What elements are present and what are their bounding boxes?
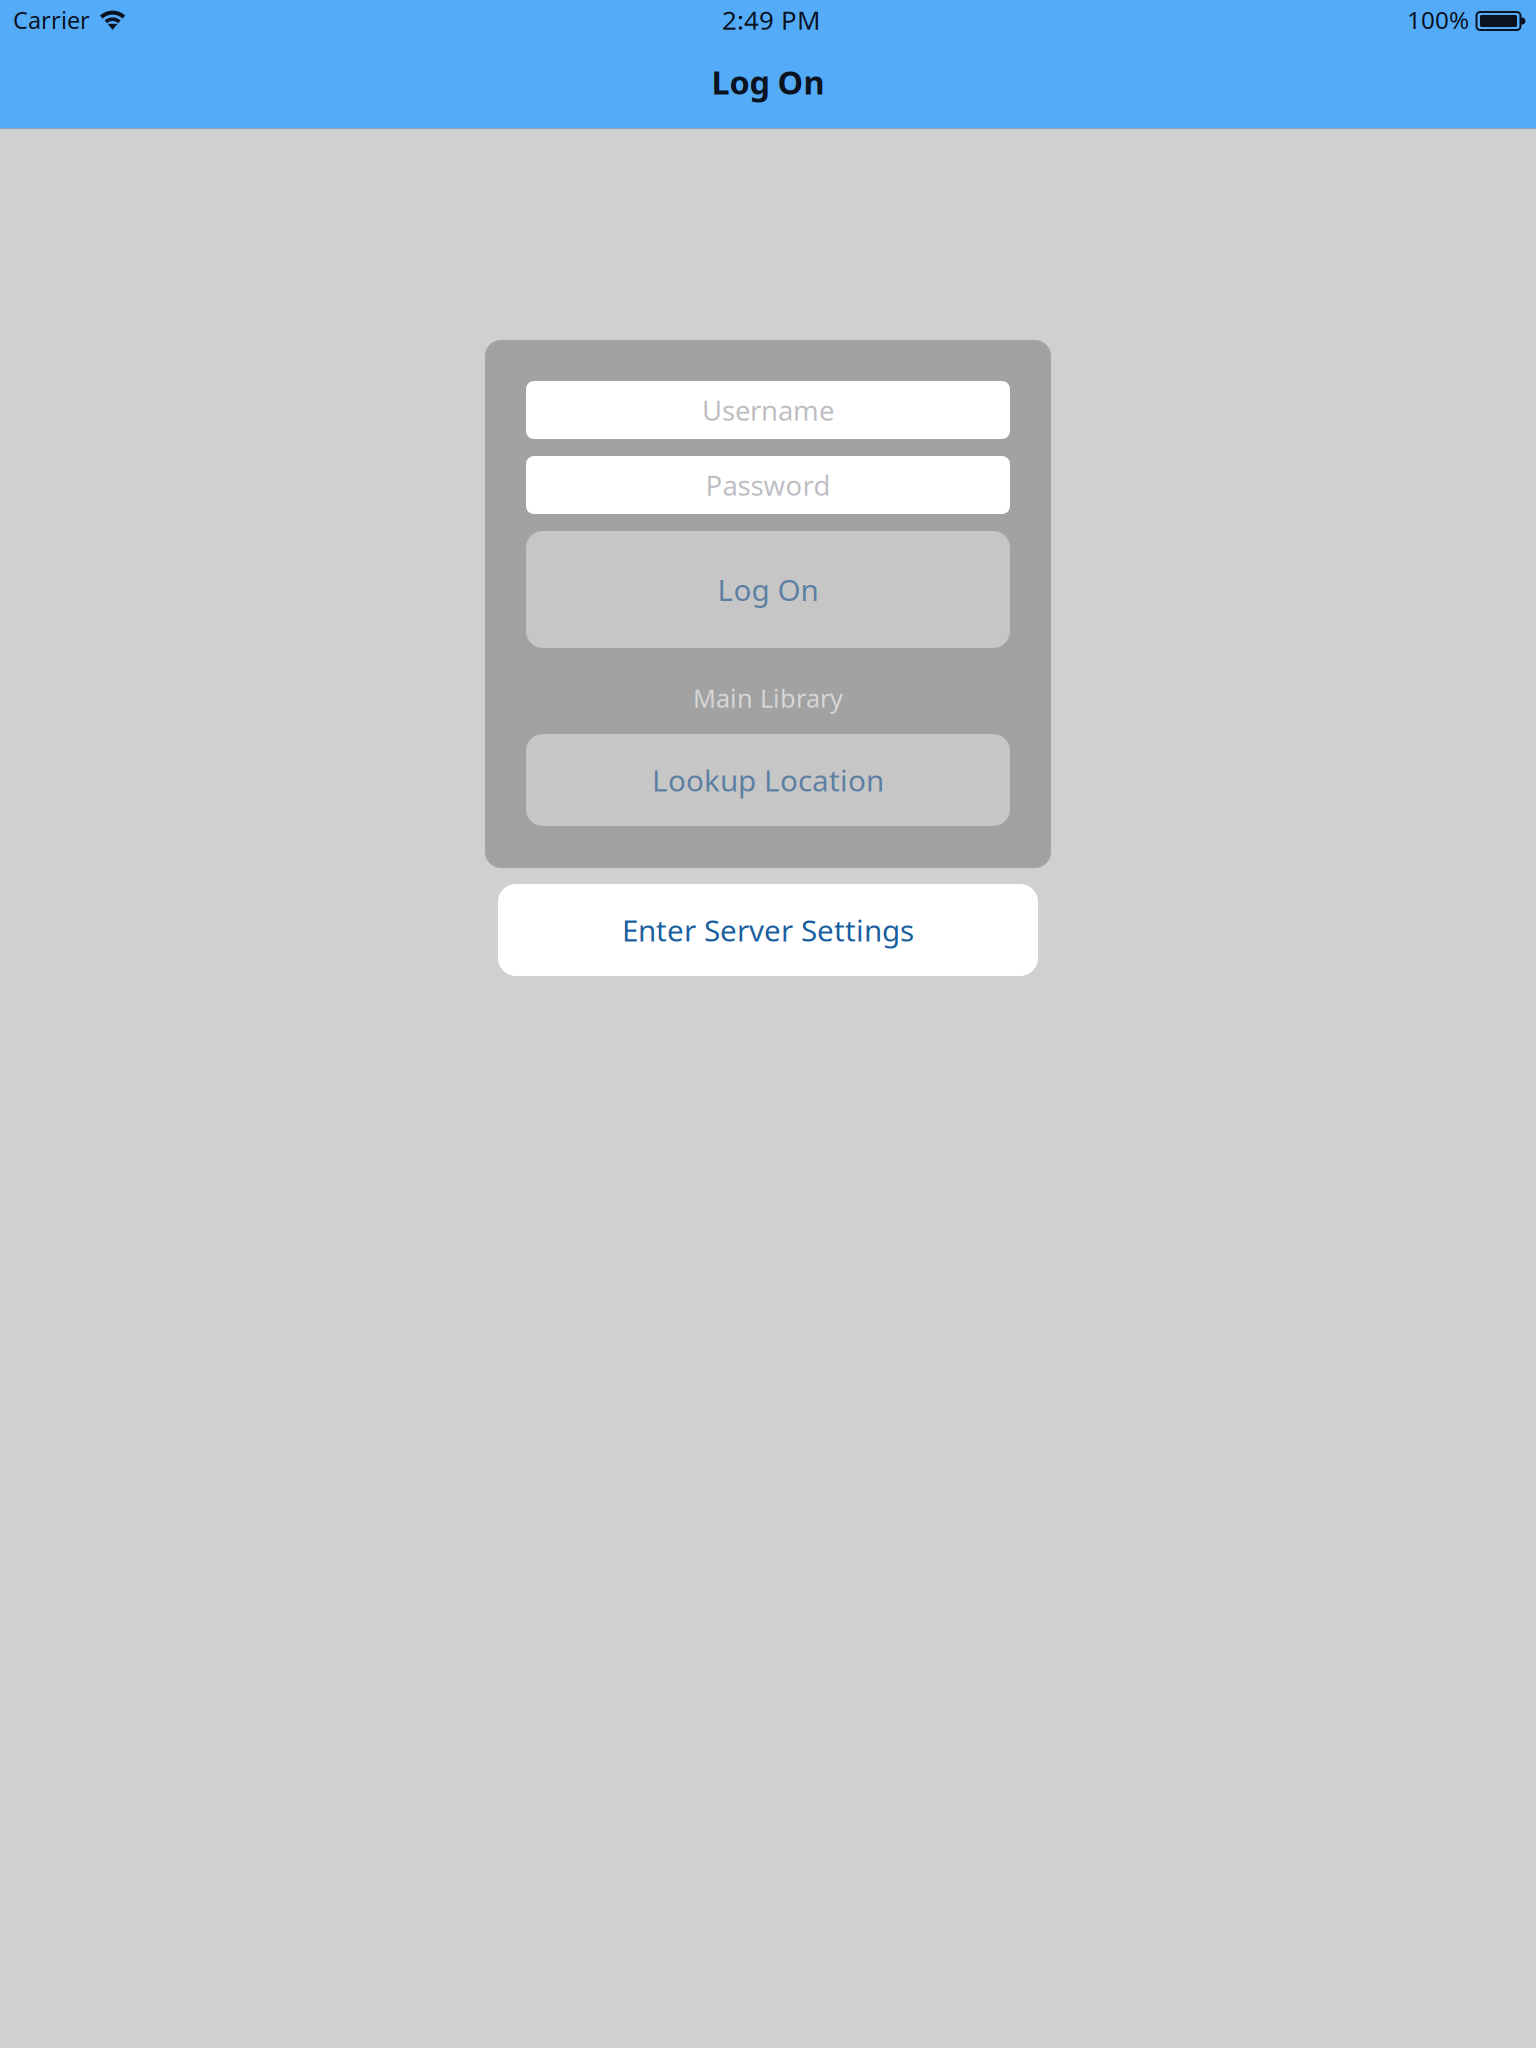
button[interactable]: Lookup Location <box>526 734 1010 826</box>
staticText: 100% <box>1407 3 1469 36</box>
staticText: Enter Server Settings <box>622 910 914 950</box>
button[interactable]: Enter Server Settings <box>498 884 1038 976</box>
button[interactable]: Log On <box>526 531 1010 648</box>
staticText: 2:49 PM <box>722 2 820 37</box>
button[interactable]: Password <box>526 456 1010 514</box>
staticText: Carrier <box>13 4 90 36</box>
button[interactable]: Username <box>526 381 1010 439</box>
staticText: Log On <box>717 569 818 610</box>
staticText: Username <box>702 391 834 429</box>
staticText: Main Library <box>693 681 843 715</box>
staticText: Password <box>705 466 830 504</box>
staticText: Lookup Location <box>652 760 884 800</box>
staticText: Log On <box>711 60 824 104</box>
